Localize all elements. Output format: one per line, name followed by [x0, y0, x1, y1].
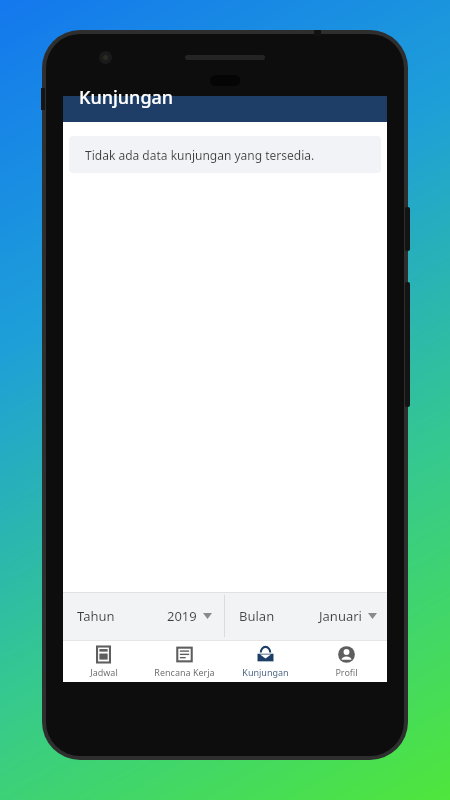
staticText: Tidak ada data kunjungan yang tersedia.	[85, 147, 315, 163]
staticText: Jadwal	[90, 666, 118, 678]
staticText: Bulan	[239, 607, 275, 625]
staticText: Kunjungan	[242, 666, 289, 678]
button[interactable]: Bulan	[225, 592, 387, 640]
button[interactable]: Jadwal	[63, 640, 144, 682]
button[interactable]: Kunjungan	[225, 640, 306, 682]
button[interactable]: Rencana Kerja	[144, 640, 225, 682]
button[interactable]: Tahun	[63, 592, 224, 640]
staticText: Januari	[319, 607, 362, 625]
staticText: Rencana Kerja	[154, 666, 215, 678]
staticText: Profil	[335, 666, 358, 678]
staticText: Tahun	[77, 607, 115, 625]
staticText: 2019	[167, 607, 197, 625]
staticText: Kunjungan	[79, 85, 174, 110]
button[interactable]: Profil	[306, 640, 387, 682]
